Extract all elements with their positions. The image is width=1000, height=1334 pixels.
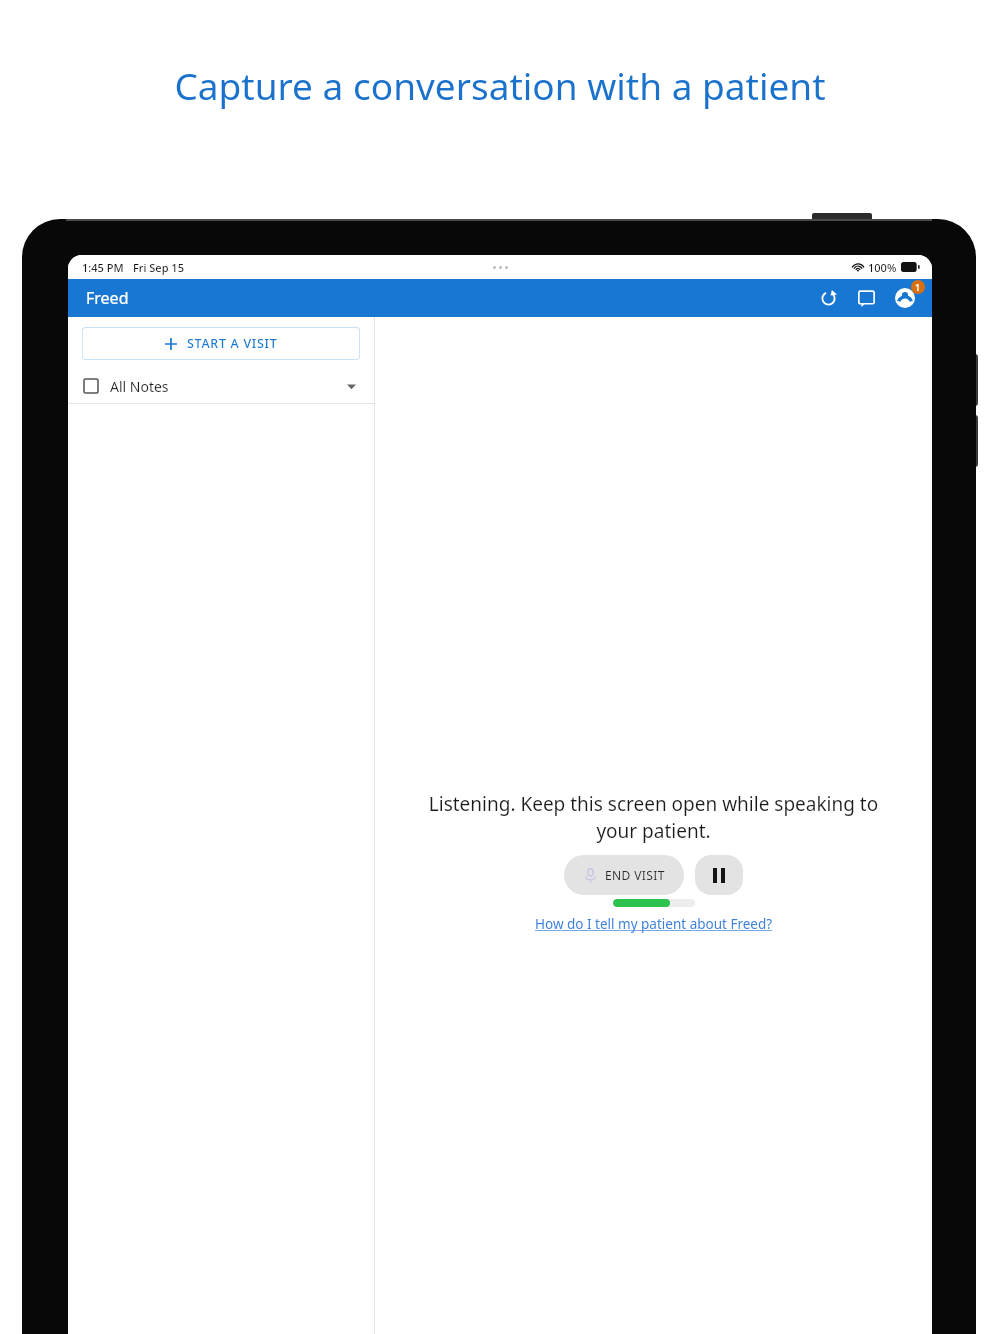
button[interactable]: Messages	[850, 282, 882, 314]
staticText: END VISIT	[605, 867, 665, 883]
button[interactable]: All Notes	[68, 369, 374, 403]
button[interactable]: Pause	[695, 855, 743, 895]
staticText: 100%	[868, 260, 897, 275]
staticText: START A VISIT	[187, 335, 278, 352]
staticText: Capture a conversation with a patient	[174, 60, 826, 110]
staticText: How do I tell my patient about Freed?	[535, 915, 773, 933]
staticText: 1:45 PM	[82, 260, 124, 275]
button[interactable]: Refresh	[812, 282, 844, 314]
button[interactable]: How do I tell my patient about Freed?	[535, 915, 773, 933]
staticText: Fri Sep 15	[133, 260, 184, 275]
button[interactable]: END VISIT	[564, 855, 684, 895]
staticText: All Notes	[110, 377, 169, 396]
button[interactable]: START A VISIT	[82, 327, 360, 360]
staticText: Freed	[86, 287, 129, 309]
staticText: Listening. Keep this screen open while s…	[413, 791, 894, 844]
staticText: 1	[915, 281, 921, 293]
button[interactable]: Account	[888, 281, 922, 315]
